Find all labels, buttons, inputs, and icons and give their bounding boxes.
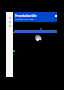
button[interactable] <box>7 16 13 20</box>
staticText: Subtitle row here <box>15 17 35 20</box>
staticText: Presentation title <box>15 14 37 18</box>
button[interactable] <box>7 24 13 28</box>
other: More options <box>55 15 57 17</box>
button[interactable] <box>7 20 13 24</box>
button[interactable]: Presentation title <box>14 12 57 22</box>
